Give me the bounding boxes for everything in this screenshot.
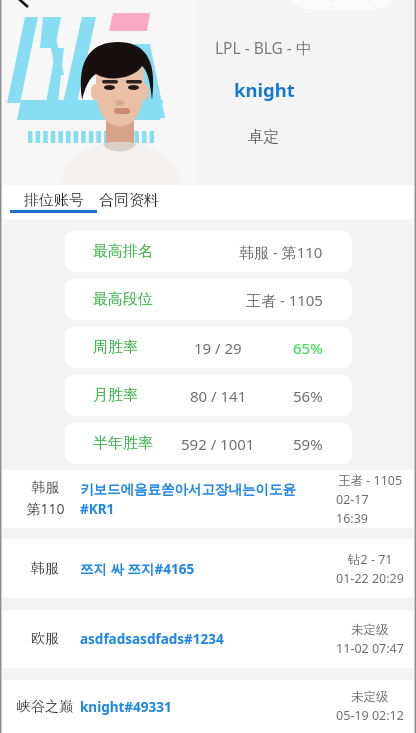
button[interactable]: 月胜率	[65, 375, 352, 416]
staticText: 592 / 1001	[181, 434, 255, 454]
staticText: 最高排名	[93, 242, 153, 261]
staticText: 未定级	[351, 689, 389, 705]
staticText: 峡谷之巅	[17, 698, 73, 716]
button[interactable]: 欧服	[0, 610, 416, 668]
staticText: 11-02 07:47	[336, 640, 404, 657]
staticText: knight#49331	[80, 698, 172, 716]
staticText: 韩服 - 第110	[239, 242, 323, 262]
staticText: 키보드에음료쏟아서고장내는이도윤#KR1	[80, 481, 326, 518]
staticText: 59%	[293, 434, 323, 454]
staticText: 王者 - 1105	[246, 290, 323, 310]
staticText: 05-19 02:12	[336, 707, 404, 724]
staticText: 56%	[293, 386, 323, 406]
staticText: 周胜率	[93, 338, 138, 357]
staticText: 韩服	[31, 560, 59, 578]
button[interactable]: 周胜率	[65, 327, 352, 368]
staticText: 80 / 141	[190, 386, 247, 406]
staticText: 合同资料	[99, 191, 159, 210]
staticText: 19 / 29	[194, 338, 242, 358]
staticText: 排位账号	[24, 191, 84, 210]
staticText: 쯔지 싸 쯔지#4165	[80, 560, 195, 578]
button[interactable]: 排位账号	[0, 185, 97, 213]
button[interactable]: 最高段位	[65, 279, 352, 320]
button[interactable]: 韩服 第110	[0, 470, 416, 528]
staticText: 月胜率	[93, 386, 138, 405]
staticText: 卓定	[248, 127, 279, 147]
staticText: 韩服 第110	[26, 479, 65, 519]
staticText: 65%	[293, 338, 323, 358]
staticText: 半年胜率	[93, 434, 153, 453]
staticText: LPL - BLG - 中	[215, 37, 312, 58]
staticText: 未定级	[351, 622, 389, 638]
staticText: 02-17 16:39	[336, 491, 404, 527]
staticText: asdfadsasdfads#1234	[80, 630, 224, 648]
staticText: 最高段位	[93, 290, 153, 309]
button[interactable]: 合同资料	[97, 185, 171, 210]
button[interactable]: 峡谷之巅	[0, 680, 416, 733]
button[interactable]: Back	[16, 0, 32, 5]
staticText: 王者 - 1105	[338, 472, 403, 489]
button[interactable]: 半年胜率	[65, 423, 352, 464]
button[interactable]: 最高排名	[65, 231, 352, 272]
button[interactable]: 韩服	[0, 539, 416, 598]
staticText: 钻2 - 71	[348, 551, 393, 568]
staticText: knight	[234, 77, 295, 102]
staticText: 01-22 20:29	[336, 570, 404, 587]
staticText: 欧服	[31, 630, 59, 648]
